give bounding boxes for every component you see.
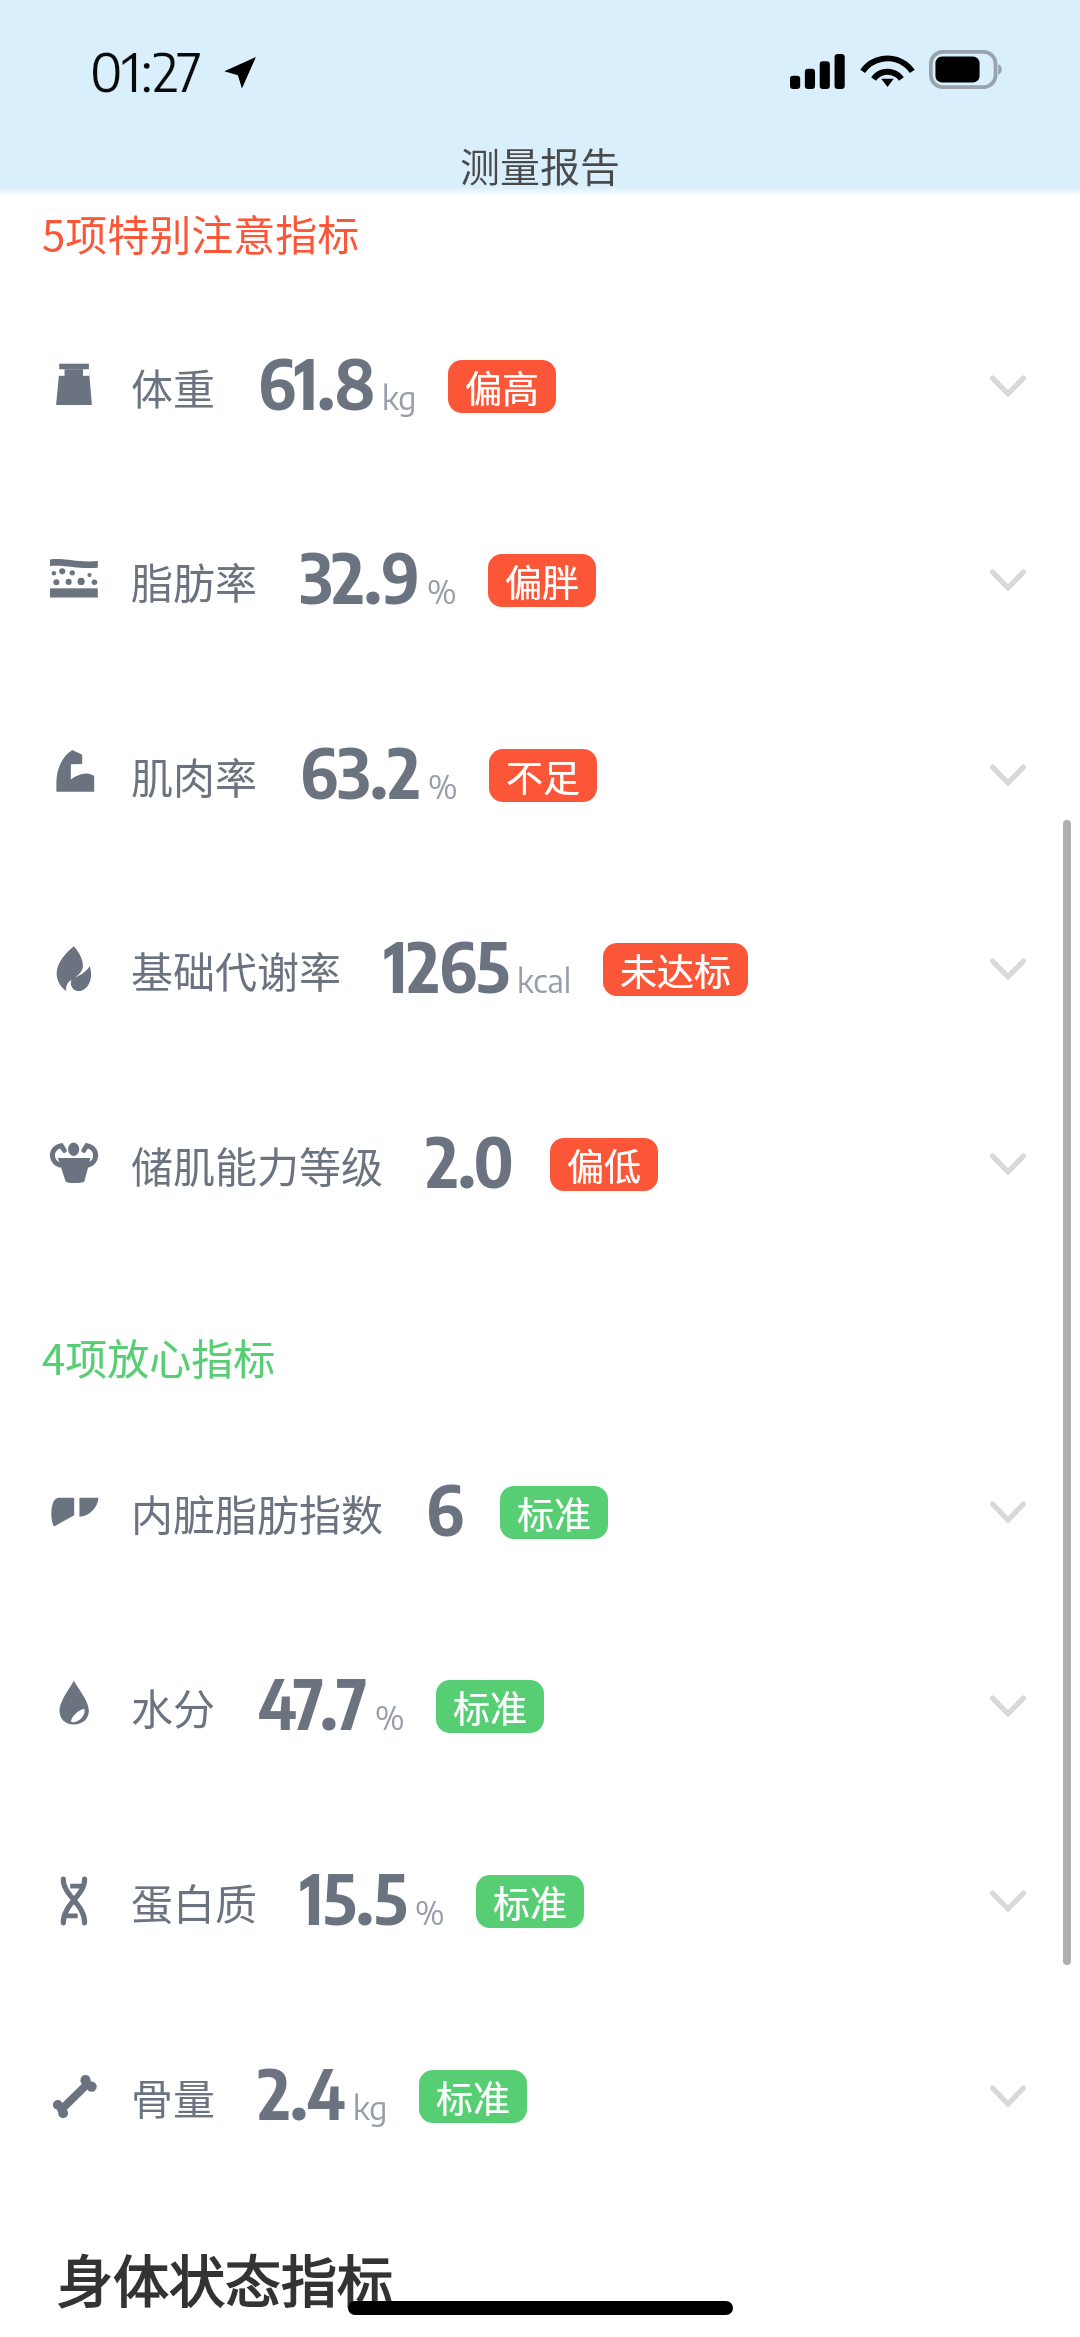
staticText: 不足 [506,749,580,802]
staticText: 基础代谢率 [131,939,342,1000]
staticText: 骨量 [131,2066,216,2127]
staticText: 2.0 [426,1117,514,1203]
staticText: % [427,571,457,611]
other: Expand $centerY [990,958,1026,980]
button[interactable]: Expand $centerY [0,1415,1080,1609]
staticText: % [428,766,458,806]
staticText: 标准 [517,1486,591,1539]
staticText: kcal [517,960,572,1000]
staticText: 身体状态指标 [57,2237,393,2318]
staticText: 内脏脂肪指数 [131,1482,384,1543]
staticText: 蛋白质 [131,1871,258,1932]
staticText: kg [353,2087,388,2127]
staticText: 1265 [384,922,510,1008]
staticText: 63.2 [300,728,421,814]
staticText: % [375,1697,405,1737]
other: Expand $centerY [990,1501,1026,1523]
staticText: 6 [426,1465,464,1551]
staticText: % [415,1892,445,1932]
staticText: 61.8 [258,339,375,425]
staticText: 未达标 [620,943,731,996]
staticText: 偏胖 [505,554,579,607]
staticText: 47.7 [258,1659,368,1745]
button[interactable]: Expand $centerY [0,872,1080,1066]
button[interactable]: Expand $centerY [0,1609,1080,1803]
button[interactable]: Expand $centerY [0,483,1080,677]
staticText: 测量报告 [460,136,620,194]
other: Expand $centerY [990,375,1026,397]
other: Expand $centerY [990,1153,1026,1175]
staticText: kg [382,377,417,417]
button[interactable]: Expand $centerY [0,1804,1080,1998]
staticText: 32.9 [300,533,420,619]
staticText: 标准 [493,1875,567,1928]
staticText: 储肌能力等级 [131,1134,384,1195]
staticText: 4项放心指标 [42,1326,276,1387]
button[interactable]: Expand $centerY [0,289,1080,483]
staticText: 01:27 [90,38,202,103]
button[interactable]: Expand $centerY [0,1999,1080,2193]
staticText: 脂肪率 [131,550,258,611]
other: Expand $centerY [990,1890,1026,1912]
staticText: 肌肉率 [131,745,258,806]
staticText: 15.5 [300,1854,408,1940]
other: Expand $centerY [990,2085,1026,2107]
staticText: 标准 [436,2070,510,2123]
button[interactable]: Expand $centerY [0,1067,1080,1261]
staticText: 5项特别注意指标 [42,202,360,263]
other: Expand $centerY [990,569,1026,591]
staticText: 体重 [131,356,216,417]
staticText: 2.4 [258,2049,346,2135]
staticText: 水分 [131,1676,216,1737]
staticText: 偏高 [465,360,539,413]
other: Expand $centerY [990,1695,1026,1717]
staticText: 偏低 [567,1138,641,1191]
button[interactable]: Expand $centerY [0,678,1080,872]
staticText: 标准 [453,1680,527,1733]
other: Expand $centerY [990,764,1026,786]
